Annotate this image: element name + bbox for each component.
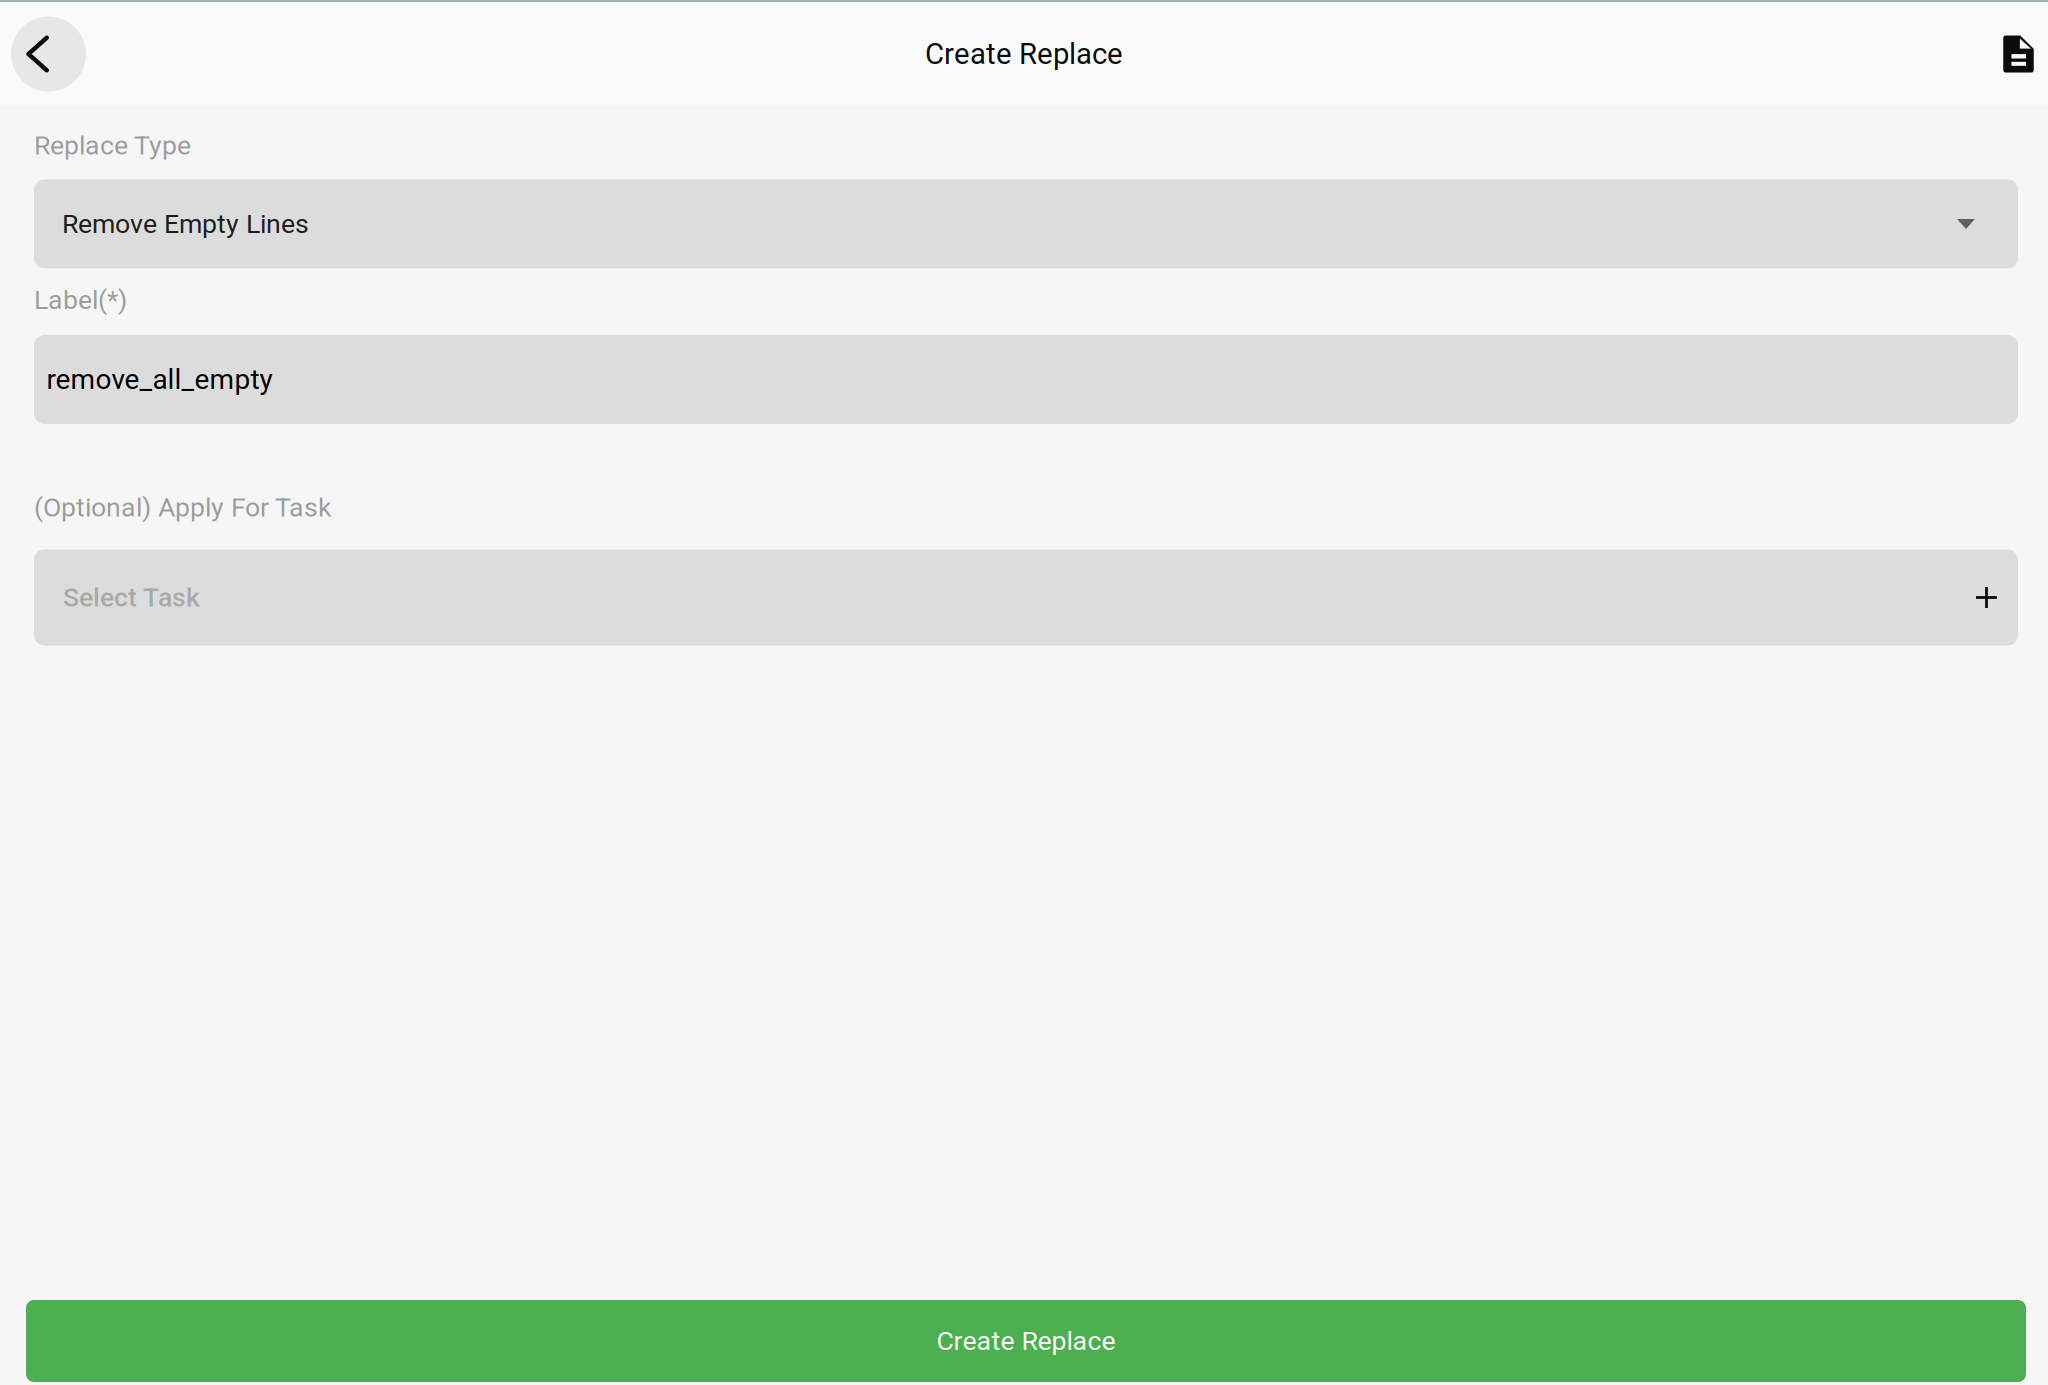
- button[interactable]: Remove Empty Lines: [34, 179, 2018, 268]
- staticText: (Optional) Apply For Task: [34, 492, 332, 523]
- staticText: Remove Empty Lines: [62, 208, 309, 240]
- staticText: Create Replace: [925, 37, 1123, 71]
- staticText: Label(*): [34, 284, 127, 316]
- button[interactable]: remove_all_empty: [34, 335, 2018, 424]
- staticText: Replace Type: [34, 130, 191, 161]
- staticText: Select Task: [63, 582, 200, 613]
- button[interactable]: Create Replace: [26, 1300, 2026, 1382]
- staticText: Create Replace: [936, 1325, 1115, 1357]
- button[interactable]: Back: [11, 16, 86, 91]
- button[interactable]: View documentation: [1996, 24, 2040, 84]
- staticText: remove_all_empty: [46, 363, 272, 396]
- button[interactable]: Select Task: [34, 549, 2018, 645]
